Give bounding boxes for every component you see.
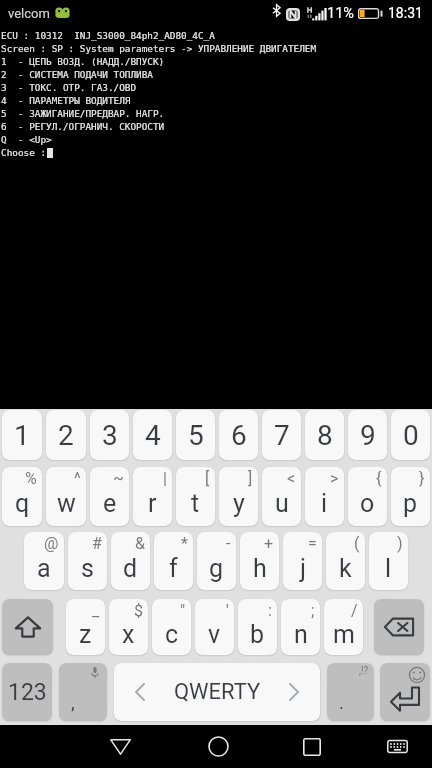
button[interactable]: ) — [369, 532, 408, 590]
button[interactable]: - — [197, 532, 236, 590]
button[interactable]: 6 — [219, 410, 258, 460]
button[interactable]: < — [262, 467, 301, 526]
button[interactable]: } — [391, 467, 430, 526]
staticText: / — [351, 601, 358, 620]
staticText: 1 - ЦЕПЬ ВОЗД. (НАДД./ВПУСК) — [1, 56, 165, 67]
button[interactable]: : — [238, 599, 277, 655]
button[interactable]: QWERTY — [114, 663, 320, 721]
staticText: ( — [354, 534, 360, 553]
staticText: ; — [311, 601, 315, 620]
button[interactable]: Recents — [282, 725, 342, 768]
staticText: _ — [92, 601, 100, 620]
staticText: n — [294, 620, 308, 649]
button[interactable]: 0 — [391, 410, 430, 460]
staticText: " — [180, 601, 186, 620]
staticText: v — [208, 620, 221, 649]
staticText: ^ — [74, 469, 81, 488]
staticText: 2 - СИСТЕМА ПОДАЧИ ТОПЛИВА — [1, 69, 153, 80]
button[interactable]: 2 — [46, 410, 86, 460]
button[interactable]: ~ — [90, 467, 129, 526]
staticText: # — [92, 534, 102, 553]
button[interactable]: ^ — [46, 467, 86, 526]
staticText: g — [209, 554, 224, 583]
button[interactable]: @ — [24, 532, 64, 590]
staticText: w — [57, 489, 76, 518]
staticText: 18:31 — [388, 5, 423, 21]
staticText: l — [385, 554, 392, 583]
staticText: z — [79, 620, 92, 649]
staticText: 6 — [231, 419, 247, 452]
staticText: 8 — [317, 419, 333, 452]
staticText: j — [300, 554, 306, 583]
button[interactable]: ' — [195, 599, 234, 655]
button[interactable]: | — [133, 467, 172, 526]
button[interactable]: / — [324, 599, 363, 655]
staticText: } — [419, 469, 425, 488]
button[interactable]: Backspace — [374, 599, 424, 655]
button[interactable]: _ — [66, 599, 105, 655]
staticText: Choose : — [1, 147, 47, 158]
button[interactable]: 123 — [2, 663, 52, 721]
staticText: u — [275, 489, 289, 518]
staticText: 4 - ПАРАМЕТРЫ ВОДИТЕЛЯ — [1, 95, 131, 106]
staticText: ) — [397, 534, 403, 553]
button[interactable]: & — [111, 532, 150, 590]
button[interactable]: 7 — [262, 410, 301, 460]
staticText: : — [268, 601, 272, 620]
staticText: * — [181, 534, 188, 553]
staticText: & — [135, 534, 145, 553]
staticText: . — [339, 691, 345, 713]
button[interactable]: 5 — [176, 410, 215, 460]
staticText: y — [233, 489, 245, 518]
staticText: ECU : 10312 INJ_S3000_84ph2_AD80_4C_A — [1, 30, 215, 41]
staticText: 9 — [360, 419, 376, 452]
staticText: 5 - ЗАЖИГАНИЕ/ПРЕДВАР. НАГР. — [1, 108, 165, 119]
staticText: 5 — [188, 419, 204, 452]
staticText: 0 — [403, 419, 419, 452]
button[interactable]: Home — [188, 725, 248, 768]
button[interactable]: Period, symbols — [327, 663, 374, 721]
button[interactable]: 1 — [2, 410, 42, 460]
button[interactable]: # — [68, 532, 107, 590]
button[interactable]: ; — [281, 599, 320, 655]
button[interactable]: [ — [176, 467, 215, 526]
staticText: 1 — [14, 419, 30, 452]
staticText: Q - <Up> — [1, 134, 52, 145]
staticText: m — [333, 620, 355, 649]
staticText: 2 — [58, 419, 74, 452]
staticText: 3 — [102, 419, 118, 452]
button[interactable]: Comma, voice input — [59, 663, 107, 721]
staticText: t — [191, 489, 200, 518]
button[interactable]: * — [154, 532, 193, 590]
staticText: x — [122, 620, 135, 649]
staticText: 4 — [145, 419, 161, 452]
button[interactable]: Enter — [380, 663, 430, 721]
button[interactable]: ] — [219, 467, 258, 526]
button[interactable]: Shift — [2, 599, 53, 655]
staticText: r — [148, 489, 157, 518]
staticText: c — [165, 620, 179, 649]
button[interactable]: { — [348, 467, 387, 526]
staticText: - — [226, 534, 231, 553]
staticText: = — [308, 534, 317, 553]
button[interactable]: = — [283, 532, 322, 590]
button[interactable]: Hide keyboard — [367, 725, 427, 768]
button[interactable]: " — [152, 599, 191, 655]
button[interactable]: % — [2, 467, 42, 526]
staticText: 3 - ТОКС. ОТР. ГАЗ./OBD — [1, 82, 137, 93]
staticText: b — [250, 620, 265, 649]
staticText: a — [37, 554, 51, 583]
staticText: < — [287, 469, 296, 488]
button[interactable]: 8 — [305, 410, 344, 460]
button[interactable]: 3 — [90, 410, 129, 460]
button[interactable]: 9 — [348, 410, 387, 460]
button[interactable]: + — [240, 532, 279, 590]
button[interactable]: ( — [326, 532, 365, 590]
button[interactable]: $ — [109, 599, 148, 655]
button[interactable]: Back — [90, 725, 150, 768]
staticText: { — [376, 469, 382, 488]
button[interactable]: 4 — [133, 410, 172, 460]
staticText: | — [163, 469, 167, 488]
button[interactable]: > — [305, 467, 344, 526]
staticText: , — [71, 691, 75, 713]
